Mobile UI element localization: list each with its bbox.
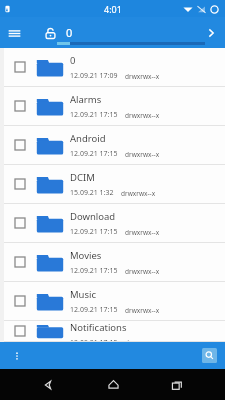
staticText: 12.09.21 17:09 [70, 71, 118, 81]
button[interactable]: Select Download [11, 214, 29, 232]
button[interactable]: Select DCIM [4, 165, 225, 204]
button[interactable]: More options [8, 347, 26, 365]
button[interactable]: Select Music [4, 282, 225, 321]
staticText: 4:01 [104, 3, 122, 15]
button[interactable]: Menu [0, 19, 28, 47]
staticText: 12.09.21 17:15 [70, 266, 118, 276]
button[interactable]: Back [31, 369, 65, 400]
button[interactable]: Recent apps [160, 369, 194, 400]
button[interactable]: Forward [197, 19, 225, 47]
button[interactable]: Select Notifications [11, 322, 29, 340]
staticText: 0 [66, 25, 197, 40]
staticText: 12.09.21 17:15 [70, 149, 118, 159]
staticText: drwxrwx--x [125, 72, 160, 81]
button[interactable]: Select Notifications [4, 321, 225, 342]
button[interactable]: Select Music [11, 292, 29, 310]
button[interactable]: Lock [38, 21, 62, 45]
button[interactable]: Select 0 [11, 58, 29, 76]
button[interactable]: Select Android [11, 136, 29, 154]
staticText: 12.09.21 17:15 [70, 110, 118, 120]
button[interactable]: Select 0 [4, 48, 225, 87]
staticText: drwxrwx--x [125, 306, 160, 315]
staticText: drwxrwx--x [125, 338, 160, 341]
staticText: Movies [70, 249, 102, 262]
staticText: drwxrwx--x [125, 228, 160, 237]
staticText: Music [70, 288, 97, 301]
staticText: Download [70, 210, 116, 223]
staticText: Android [70, 132, 106, 145]
staticText: Alarms [70, 93, 102, 106]
staticText: drwxrwx--x [125, 111, 160, 120]
staticText: 15.09.21 1:32 [70, 188, 114, 198]
staticText: drwxrwx--x [125, 150, 160, 159]
button[interactable]: Select Movies [11, 253, 29, 271]
staticText: DCIM [70, 171, 95, 184]
staticText: 0 [70, 54, 76, 67]
button[interactable]: Select Android [4, 126, 225, 165]
staticText: Notifications [70, 321, 127, 334]
button[interactable]: Select DCIM [11, 175, 29, 193]
staticText: 12.09.21 17:15 [70, 227, 118, 237]
staticText: 12.09.21 17:15 [70, 305, 118, 315]
staticText: drwxrwx--x [125, 267, 160, 276]
button[interactable]: Search [202, 348, 217, 363]
staticText: 12.09.21 17:15 [70, 338, 118, 341]
button[interactable]: Select Alarms [4, 87, 225, 126]
button[interactable]: Home [96, 369, 130, 400]
button[interactable]: Select Download [4, 204, 225, 243]
button[interactable]: Select Movies [4, 243, 225, 282]
staticText: drwxrwx--x [121, 189, 156, 198]
button[interactable]: Select Alarms [11, 97, 29, 115]
